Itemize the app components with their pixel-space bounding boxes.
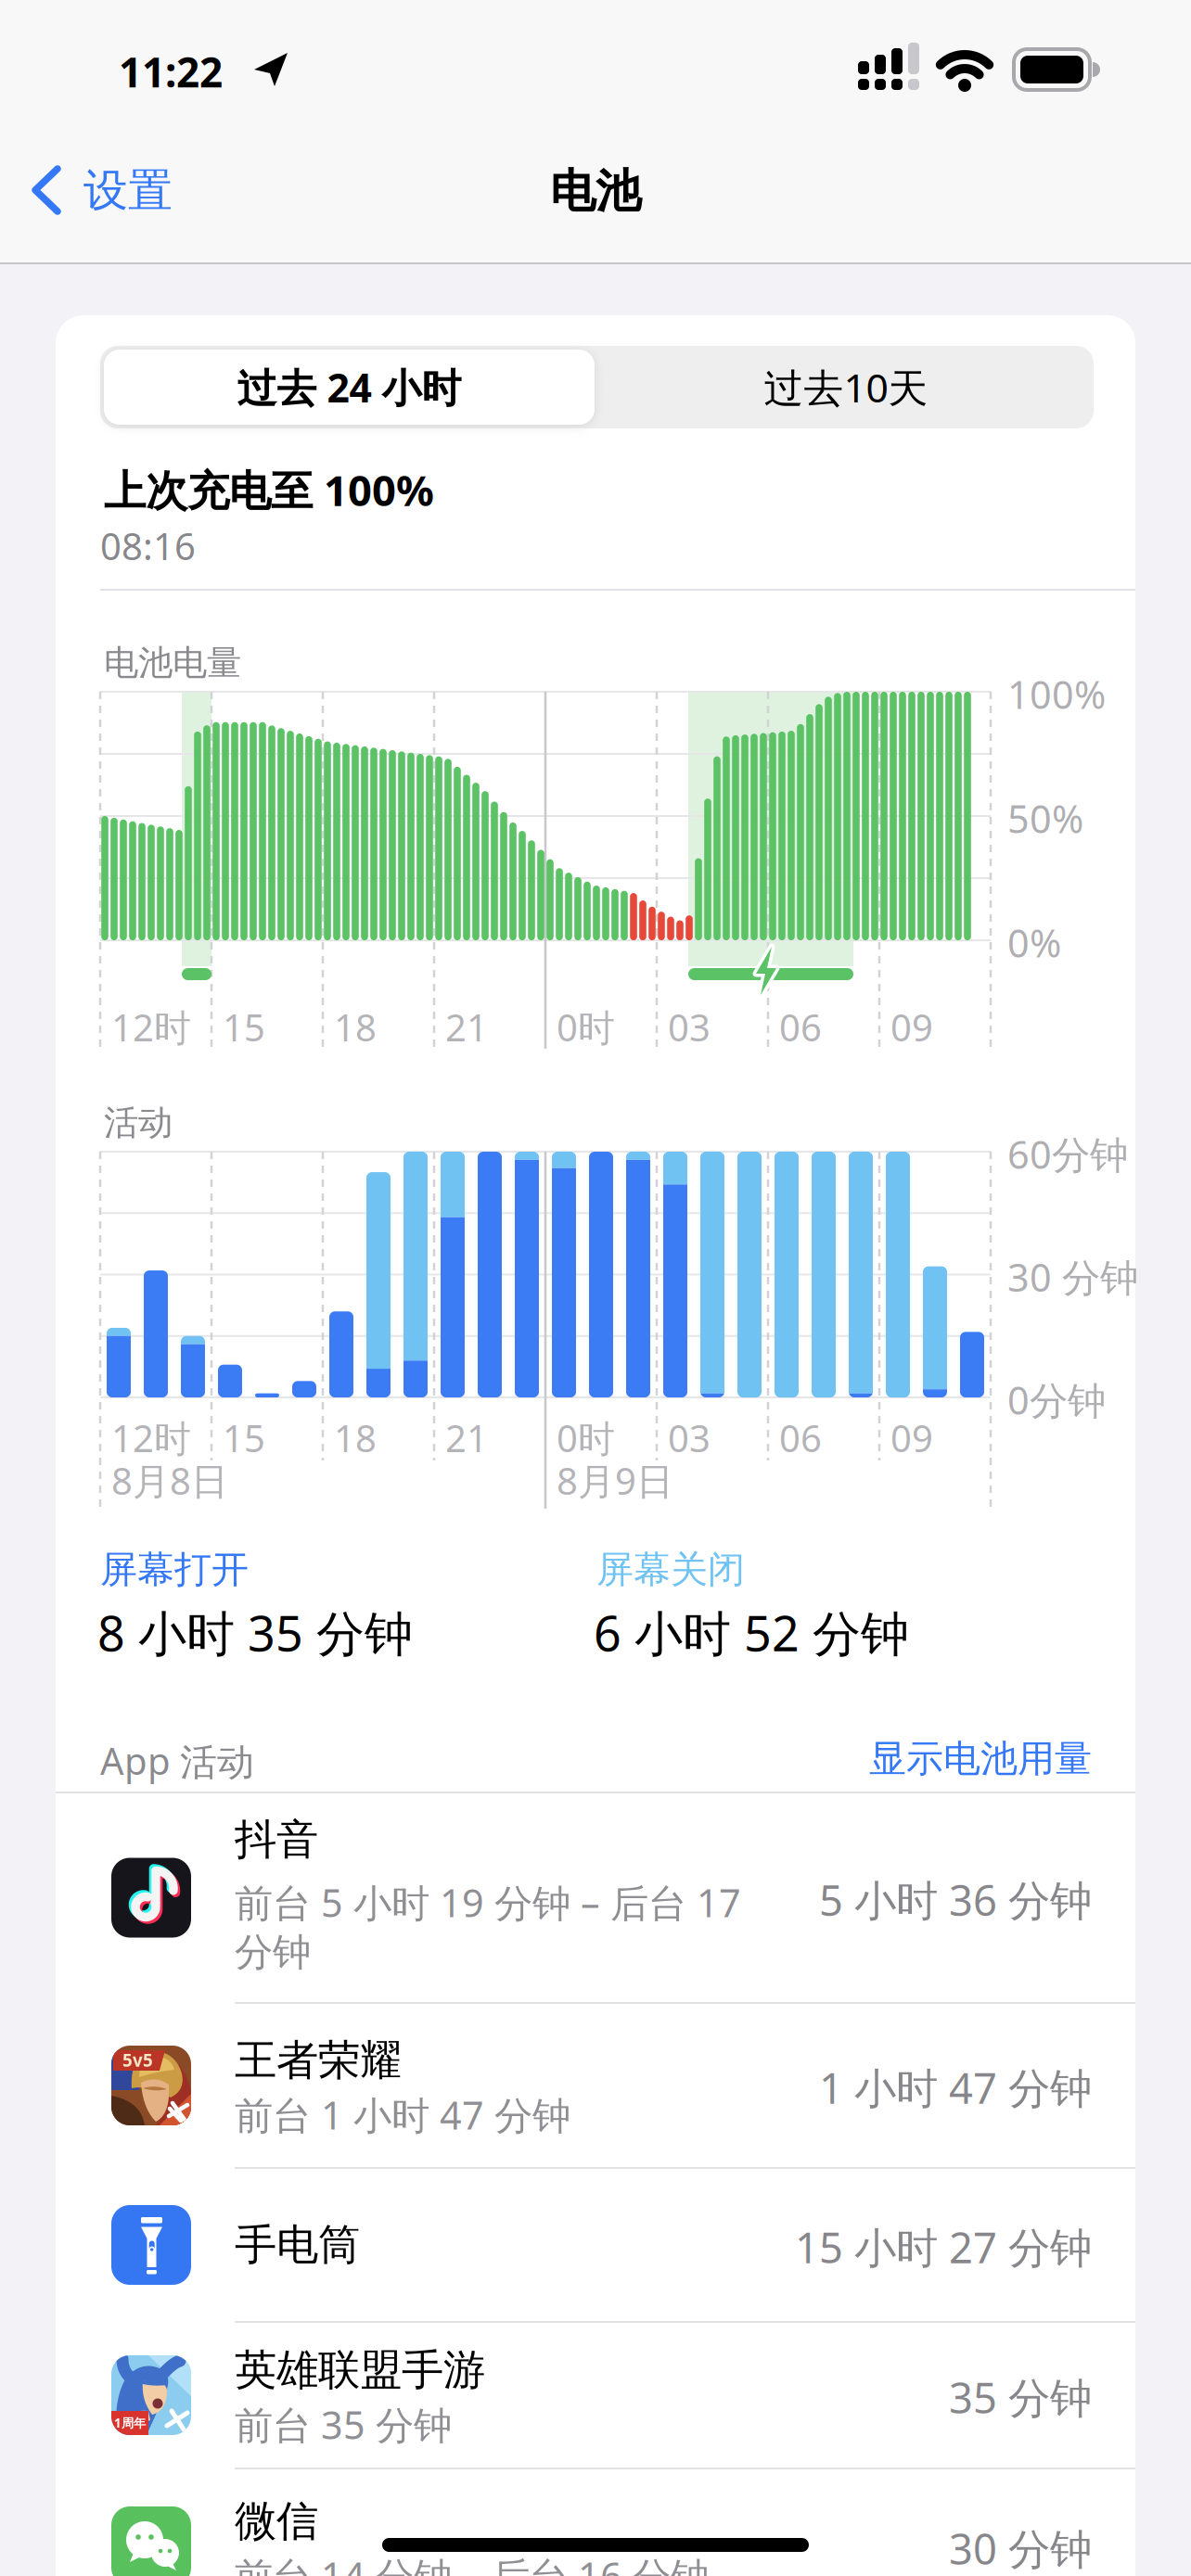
staticText: 15 <box>223 1002 265 1052</box>
staticText: 09 <box>890 1002 933 1052</box>
button[interactable]: 抖音 <box>56 1792 1135 2003</box>
staticText: 前台 1 小时 47 分钟 <box>235 2089 570 2140</box>
staticText: 0分钟 <box>1007 1374 1106 1425</box>
button[interactable]: 1周年 <box>56 2322 1135 2468</box>
staticText: 微信 <box>235 2495 318 2547</box>
button[interactable]: 微信 <box>56 2468 1135 2576</box>
staticText: 06 <box>779 1002 822 1052</box>
staticText: 35 分钟 <box>949 2369 1092 2425</box>
staticText: 12时 <box>111 1002 191 1052</box>
staticText: 12时 <box>111 1413 191 1462</box>
staticText: 前台 14 分钟 – 后台 16 分钟 <box>235 2550 709 2576</box>
staticText: 08:16 <box>100 521 196 570</box>
staticText: 18 <box>334 1002 377 1052</box>
button[interactable]: 显示电池用量 <box>869 1736 1092 1781</box>
staticText: 8月9日 <box>557 1456 673 1505</box>
staticText: 6 小时 52 分钟 <box>594 1600 909 1665</box>
staticText: 电池 <box>550 163 641 219</box>
staticText: 50% <box>1007 793 1083 844</box>
staticText: 5v5 <box>122 2048 153 2071</box>
staticText: 显示电池用量 <box>869 1736 1092 1781</box>
staticText: 分钟 <box>235 1929 311 1976</box>
staticText: 100% <box>1007 669 1106 719</box>
staticText: 上次充电至 100% <box>104 462 434 518</box>
staticText: 21 <box>445 1413 488 1462</box>
staticText: 15 <box>223 1413 265 1462</box>
staticText: 设置 <box>83 163 173 218</box>
button[interactable]: 5v5 <box>56 2003 1135 2168</box>
staticText: 电池电量 <box>104 642 241 684</box>
staticText: 21 <box>445 1002 488 1052</box>
staticText: App 活动 <box>100 1736 254 1785</box>
staticText: 11:22 <box>119 45 223 99</box>
button[interactable]: 过去10天 <box>598 350 1094 425</box>
staticText: 王者荣耀 <box>235 2034 402 2086</box>
staticText: 03 <box>668 1413 711 1462</box>
staticText: 8月8日 <box>111 1456 228 1505</box>
button[interactable]: 过去 24 小时 <box>104 350 595 425</box>
staticText: 1 小时 47 分钟 <box>819 2060 1092 2115</box>
staticText: 18 <box>334 1413 377 1462</box>
staticText: 60分钟 <box>1007 1129 1128 1179</box>
staticText: 前台 5 小时 19 分钟 – 后台 17 <box>235 1877 741 1928</box>
staticText: 活动 <box>104 1102 173 1144</box>
staticText: 抖音 <box>235 1814 318 1865</box>
button[interactable]: 手电筒 <box>56 2168 1135 2322</box>
staticText: 0时 <box>557 1002 615 1052</box>
button[interactable]: 设置 <box>26 163 239 219</box>
staticText: 30 分钟 <box>1007 1251 1138 1302</box>
staticText: 03 <box>668 1002 711 1052</box>
staticText: 8 小时 35 分钟 <box>97 1600 413 1665</box>
staticText: 过去 24 小时 <box>237 361 461 413</box>
staticText: 06 <box>779 1413 822 1462</box>
staticText: 过去10天 <box>764 361 928 413</box>
staticText: 0时 <box>557 1413 615 1462</box>
staticText: 30 分钟 <box>949 2520 1092 2576</box>
staticText: 1周年 <box>114 2415 146 2431</box>
staticText: 0% <box>1007 917 1061 968</box>
staticText: 手电筒 <box>235 2219 360 2271</box>
staticText: 前台 35 分钟 <box>235 2399 452 2450</box>
staticText: 5 小时 36 分钟 <box>819 1872 1092 1928</box>
staticText: 09 <box>890 1413 933 1462</box>
staticText: 屏幕打开 <box>100 1547 249 1592</box>
staticText: 英雄联盟手游 <box>235 2344 485 2396</box>
staticText: 15 小时 27 分钟 <box>795 2219 1092 2275</box>
staticText: 屏幕关闭 <box>596 1547 745 1592</box>
